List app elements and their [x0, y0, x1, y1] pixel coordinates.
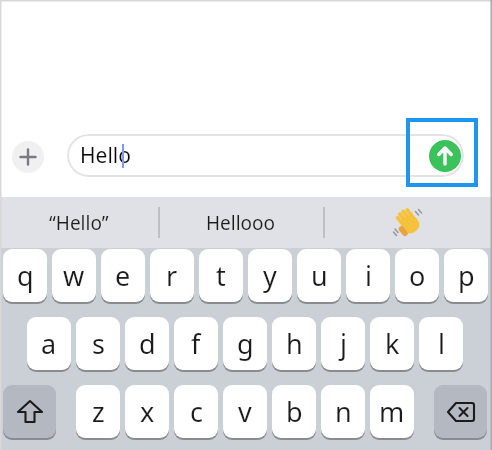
button[interactable]: v — [223, 385, 267, 438]
staticText: k — [385, 325, 400, 362]
staticText: v — [238, 393, 252, 430]
staticText: t — [216, 257, 226, 294]
button[interactable]: z — [76, 385, 120, 438]
button[interactable]: g — [223, 317, 267, 370]
staticText: u — [311, 257, 328, 294]
button[interactable]: i — [346, 249, 390, 302]
staticText: w — [63, 257, 85, 294]
button[interactable]: b — [272, 385, 316, 438]
staticText: f — [191, 325, 201, 362]
button[interactable]: Hello — [67, 134, 464, 177]
staticText: p — [458, 257, 475, 294]
button[interactable]: o — [395, 249, 439, 302]
staticText: s — [92, 325, 105, 362]
button[interactable]: k — [370, 317, 414, 370]
button[interactable]: s — [76, 317, 120, 370]
button[interactable]: Hellooo — [158, 197, 323, 248]
button[interactable]: e — [101, 249, 145, 302]
button[interactable]: q — [3, 249, 47, 302]
button[interactable]: d — [125, 317, 169, 370]
staticText: b — [286, 393, 303, 430]
button[interactable]: j — [321, 317, 365, 370]
button[interactable] — [3, 385, 56, 438]
staticText: a — [41, 325, 57, 362]
button[interactable]: c — [174, 385, 218, 438]
button[interactable]: u — [297, 249, 341, 302]
staticText: Hello — [80, 141, 131, 170]
button[interactable]: x — [125, 385, 169, 438]
staticText: “Hello” — [49, 210, 109, 236]
button[interactable]: a — [27, 317, 71, 370]
staticText: z — [92, 393, 105, 430]
staticText: c — [190, 393, 203, 430]
button[interactable] — [323, 197, 492, 248]
button[interactable]: m — [370, 385, 414, 438]
staticText: o — [409, 257, 426, 294]
staticText: h — [286, 325, 303, 362]
staticText: y — [263, 257, 277, 294]
staticText: x — [140, 393, 155, 430]
staticText: l — [438, 325, 445, 362]
button[interactable]: y — [248, 249, 292, 302]
button[interactable] — [434, 385, 487, 438]
staticText: Hellooo — [206, 210, 276, 236]
button[interactable]: l — [419, 317, 463, 370]
button[interactable]: p — [444, 249, 488, 302]
staticText: m — [379, 393, 405, 430]
staticText: e — [115, 257, 131, 294]
staticText: d — [139, 325, 156, 362]
button[interactable]: r — [150, 249, 194, 302]
button[interactable]: t — [199, 249, 243, 302]
button[interactable] — [12, 141, 44, 173]
button[interactable]: “Hello” — [0, 197, 158, 248]
button[interactable] — [429, 140, 461, 172]
button[interactable]: h — [272, 317, 316, 370]
button[interactable]: w — [52, 249, 96, 302]
staticText: q — [17, 257, 34, 294]
staticText: j — [340, 325, 347, 362]
button[interactable]: n — [321, 385, 365, 438]
staticText: g — [237, 325, 254, 362]
staticText: r — [166, 257, 178, 294]
staticText: n — [335, 393, 352, 430]
staticText: i — [365, 257, 372, 294]
button[interactable]: f — [174, 317, 218, 370]
